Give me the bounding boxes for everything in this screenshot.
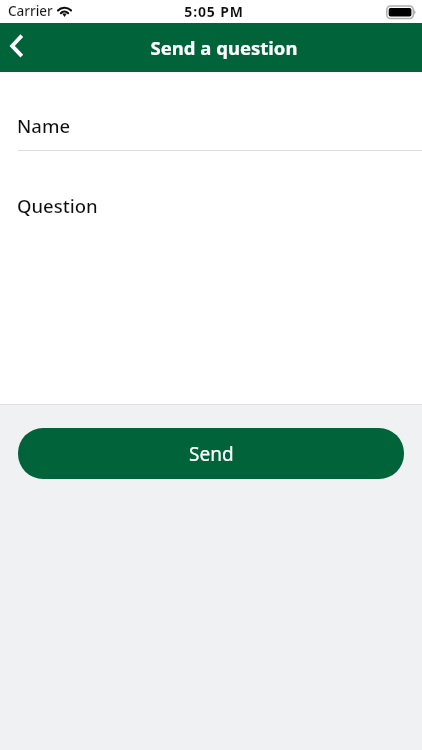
staticText: Question	[17, 193, 98, 218]
button[interactable]: Question	[0, 151, 422, 404]
other: Battery full	[384, 4, 418, 20]
staticText: Send	[189, 441, 234, 467]
button[interactable]: Name	[0, 72, 422, 151]
staticText: Send a question	[26, 35, 422, 60]
staticText: 5:05 PM	[3, 2, 422, 21]
staticText: Carrier	[8, 2, 53, 20]
button[interactable]: Back	[0, 23, 44, 72]
other: Wi-Fi	[56, 4, 73, 18]
button[interactable]: Send	[18, 428, 404, 479]
staticText: Name	[17, 113, 71, 138]
